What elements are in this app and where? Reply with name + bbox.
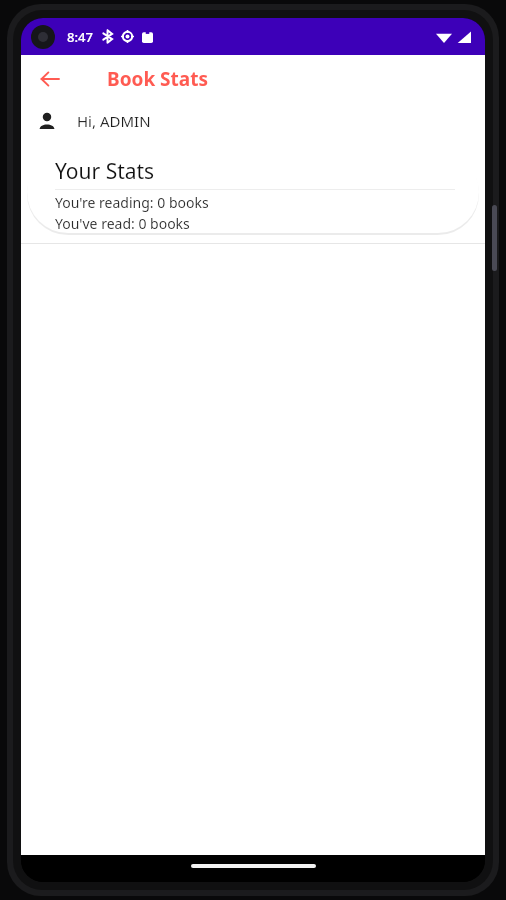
staticText: You've read: 0 books [55,214,190,233]
button[interactable]: Your Stats [27,151,479,233]
button[interactable]: Back [33,62,67,96]
staticText: Book Stats [107,66,208,92]
staticText: 8:47 [67,28,93,46]
staticText: Hi, ADMIN [77,111,151,131]
staticText: You're reading: 0 books [55,193,209,212]
staticText: Your Stats [55,157,155,186]
